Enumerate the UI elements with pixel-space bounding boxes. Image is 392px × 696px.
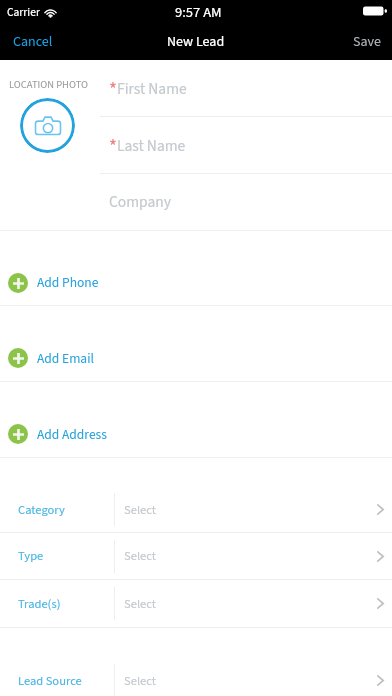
button[interactable]: *	[100, 117, 392, 173]
staticText: Type	[18, 547, 44, 565]
staticText: LOCATION PHOTO	[9, 77, 89, 92]
staticText: Cancel	[13, 32, 53, 52]
button[interactable]: Add location photo	[20, 98, 75, 153]
staticText: Select	[124, 595, 157, 613]
button[interactable]: Cancel	[0, 24, 66, 60]
button[interactable]: Add Email	[0, 335, 392, 381]
button[interactable]: Trade(s)	[0, 580, 392, 627]
staticText: Category	[18, 501, 65, 519]
staticText: Last Name	[117, 135, 186, 157]
button[interactable]: *	[100, 60, 392, 116]
staticText: *	[109, 134, 117, 161]
staticText: Select	[124, 547, 157, 565]
staticText: Carrier	[7, 4, 40, 20]
staticText: Add Phone	[37, 273, 99, 292]
staticText: Save	[353, 32, 381, 52]
staticText: Add Address	[37, 425, 107, 444]
button[interactable]: Add Phone	[0, 260, 392, 305]
staticText: Select	[124, 672, 157, 690]
staticText: Select	[124, 501, 157, 519]
staticText: *	[109, 77, 117, 104]
button[interactable]: Company	[100, 174, 392, 230]
staticText: Company	[109, 191, 172, 213]
staticText: First Name	[117, 78, 187, 100]
button[interactable]: Category	[0, 487, 392, 532]
staticText: Add Email	[37, 349, 94, 368]
staticText: Trade(s)	[18, 595, 61, 613]
button[interactable]: Lead Source	[0, 657, 392, 696]
staticText: New Lead	[167, 32, 225, 52]
staticText: 9:57 AM	[175, 2, 222, 23]
button[interactable]: Save	[340, 24, 392, 60]
button[interactable]: Add Address	[0, 411, 392, 457]
button[interactable]: Type	[0, 533, 392, 579]
staticText: Lead Source	[18, 672, 82, 690]
